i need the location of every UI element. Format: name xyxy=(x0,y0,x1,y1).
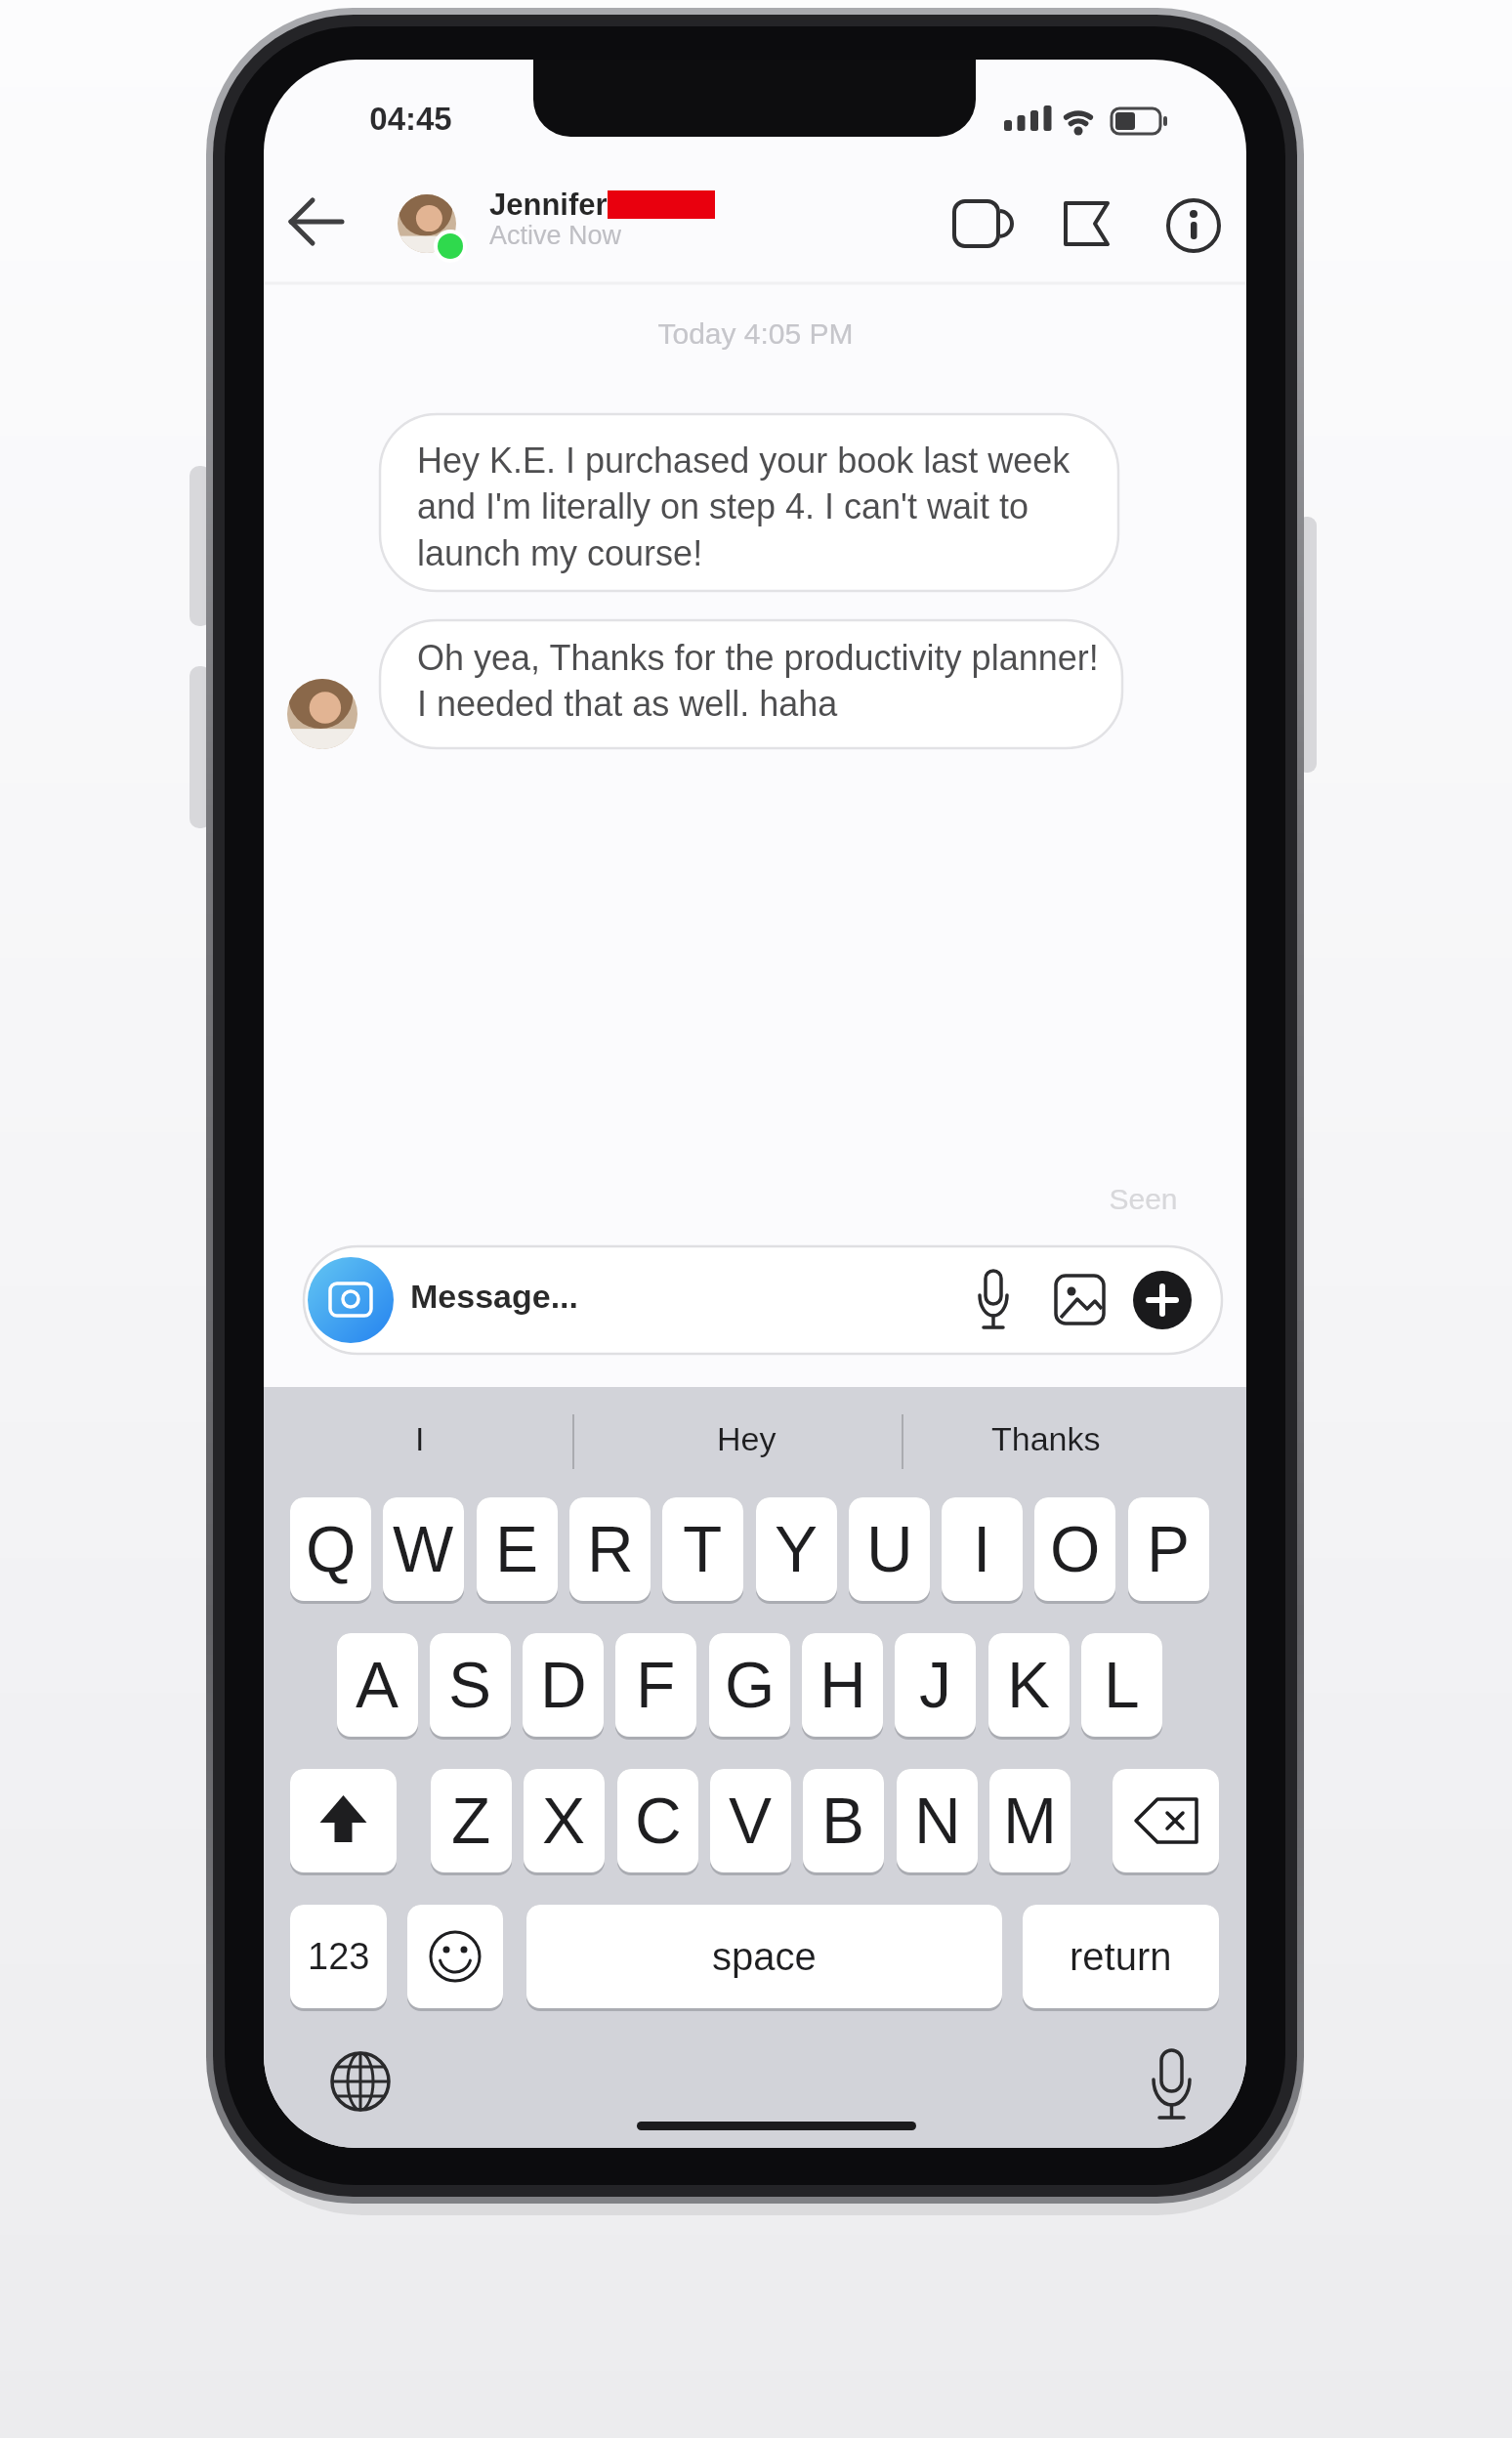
button[interactable]: A xyxy=(337,1633,418,1737)
button[interactable] xyxy=(1058,195,1116,252)
staticText: Jennifer xyxy=(489,188,608,222)
button[interactable] xyxy=(947,194,1008,253)
button[interactable] xyxy=(400,1251,947,1349)
button[interactable]: S xyxy=(430,1633,511,1737)
staticText: Message... xyxy=(410,1278,578,1315)
staticText: L xyxy=(1104,1649,1140,1721)
staticText: B xyxy=(821,1785,865,1857)
staticText: T xyxy=(683,1513,723,1585)
button[interactable]: Y xyxy=(756,1497,837,1601)
staticText: I xyxy=(973,1513,991,1585)
button[interactable]: return xyxy=(1023,1905,1219,2008)
staticText: J xyxy=(919,1649,951,1721)
staticText: O xyxy=(1050,1513,1101,1585)
staticText: V xyxy=(729,1785,773,1857)
button[interactable] xyxy=(273,192,357,253)
staticText: G xyxy=(725,1649,776,1721)
staticText: Oh yea, Thanks for the productivity plan… xyxy=(417,638,1099,724)
button[interactable]: D xyxy=(523,1633,604,1737)
button[interactable]: E xyxy=(477,1497,558,1601)
button[interactable]: R xyxy=(569,1497,651,1601)
button[interactable]: J xyxy=(895,1633,976,1737)
staticText: Today 4:05 PM xyxy=(657,317,854,351)
button[interactable]: T xyxy=(662,1497,743,1601)
button[interactable]: Thanks xyxy=(948,1408,1144,1469)
staticText: Active Now xyxy=(489,221,622,250)
button[interactable]: O xyxy=(1034,1497,1115,1601)
staticText: 123 xyxy=(308,1936,370,1977)
button[interactable] xyxy=(1133,1271,1192,1329)
staticText: K xyxy=(1007,1649,1051,1721)
staticText: Z xyxy=(451,1785,491,1857)
button[interactable]: U xyxy=(849,1497,930,1601)
button[interactable]: Hey xyxy=(649,1408,844,1469)
button[interactable]: 123 xyxy=(290,1905,387,2008)
staticText: W xyxy=(393,1513,454,1585)
staticText: Hey K.E. I purchased your book last week… xyxy=(417,441,1071,573)
button[interactable] xyxy=(1143,2042,1201,2121)
button[interactable]: P xyxy=(1128,1497,1209,1601)
staticText: Thanks xyxy=(991,1420,1101,1457)
staticText: I xyxy=(415,1420,425,1457)
button[interactable]: V xyxy=(710,1769,791,1872)
staticText: S xyxy=(448,1649,492,1721)
button[interactable]: G xyxy=(709,1633,790,1737)
button[interactable]: M xyxy=(989,1769,1071,1872)
staticText: N xyxy=(914,1785,961,1857)
button[interactable]: N xyxy=(897,1769,978,1872)
button[interactable] xyxy=(308,1257,394,1343)
staticText: U xyxy=(866,1513,913,1585)
button[interactable] xyxy=(1113,1769,1219,1872)
staticText: return xyxy=(1070,1935,1172,1979)
button[interactable]: Z xyxy=(431,1769,512,1872)
staticText: A xyxy=(356,1649,399,1721)
staticText: Seen xyxy=(1109,1183,1178,1216)
staticText: R xyxy=(587,1513,634,1585)
button[interactable]: B xyxy=(803,1769,884,1872)
staticText: E xyxy=(495,1513,539,1585)
button[interactable] xyxy=(290,1769,397,1872)
button[interactable]: F xyxy=(615,1633,696,1737)
button[interactable]: K xyxy=(988,1633,1070,1737)
staticText: M xyxy=(1003,1785,1057,1857)
staticText: C xyxy=(635,1785,682,1857)
staticText: F xyxy=(636,1649,676,1721)
button[interactable] xyxy=(1164,196,1223,255)
button[interactable]: Q xyxy=(290,1497,371,1601)
button[interactable]: H xyxy=(802,1633,883,1737)
staticText: X xyxy=(542,1785,586,1857)
button[interactable] xyxy=(407,1905,503,2008)
button[interactable]: L xyxy=(1081,1633,1162,1737)
button[interactable] xyxy=(325,2046,396,2117)
button[interactable]: C xyxy=(617,1769,698,1872)
staticText: D xyxy=(540,1649,587,1721)
staticText: Hey xyxy=(717,1420,777,1457)
staticText: Y xyxy=(775,1513,819,1585)
button[interactable]: X xyxy=(524,1769,605,1872)
staticText: Q xyxy=(306,1513,357,1585)
button[interactable]: space xyxy=(526,1905,1002,2008)
button[interactable] xyxy=(1050,1270,1110,1329)
staticText: 04:45 xyxy=(369,101,452,137)
staticText: space xyxy=(712,1935,817,1979)
button[interactable] xyxy=(396,192,458,255)
button[interactable]: I xyxy=(942,1497,1023,1601)
button[interactable]: I xyxy=(322,1408,518,1469)
staticText: H xyxy=(819,1649,866,1721)
button[interactable] xyxy=(962,1263,1025,1336)
staticText: P xyxy=(1147,1513,1191,1585)
button[interactable]: W xyxy=(383,1497,464,1601)
